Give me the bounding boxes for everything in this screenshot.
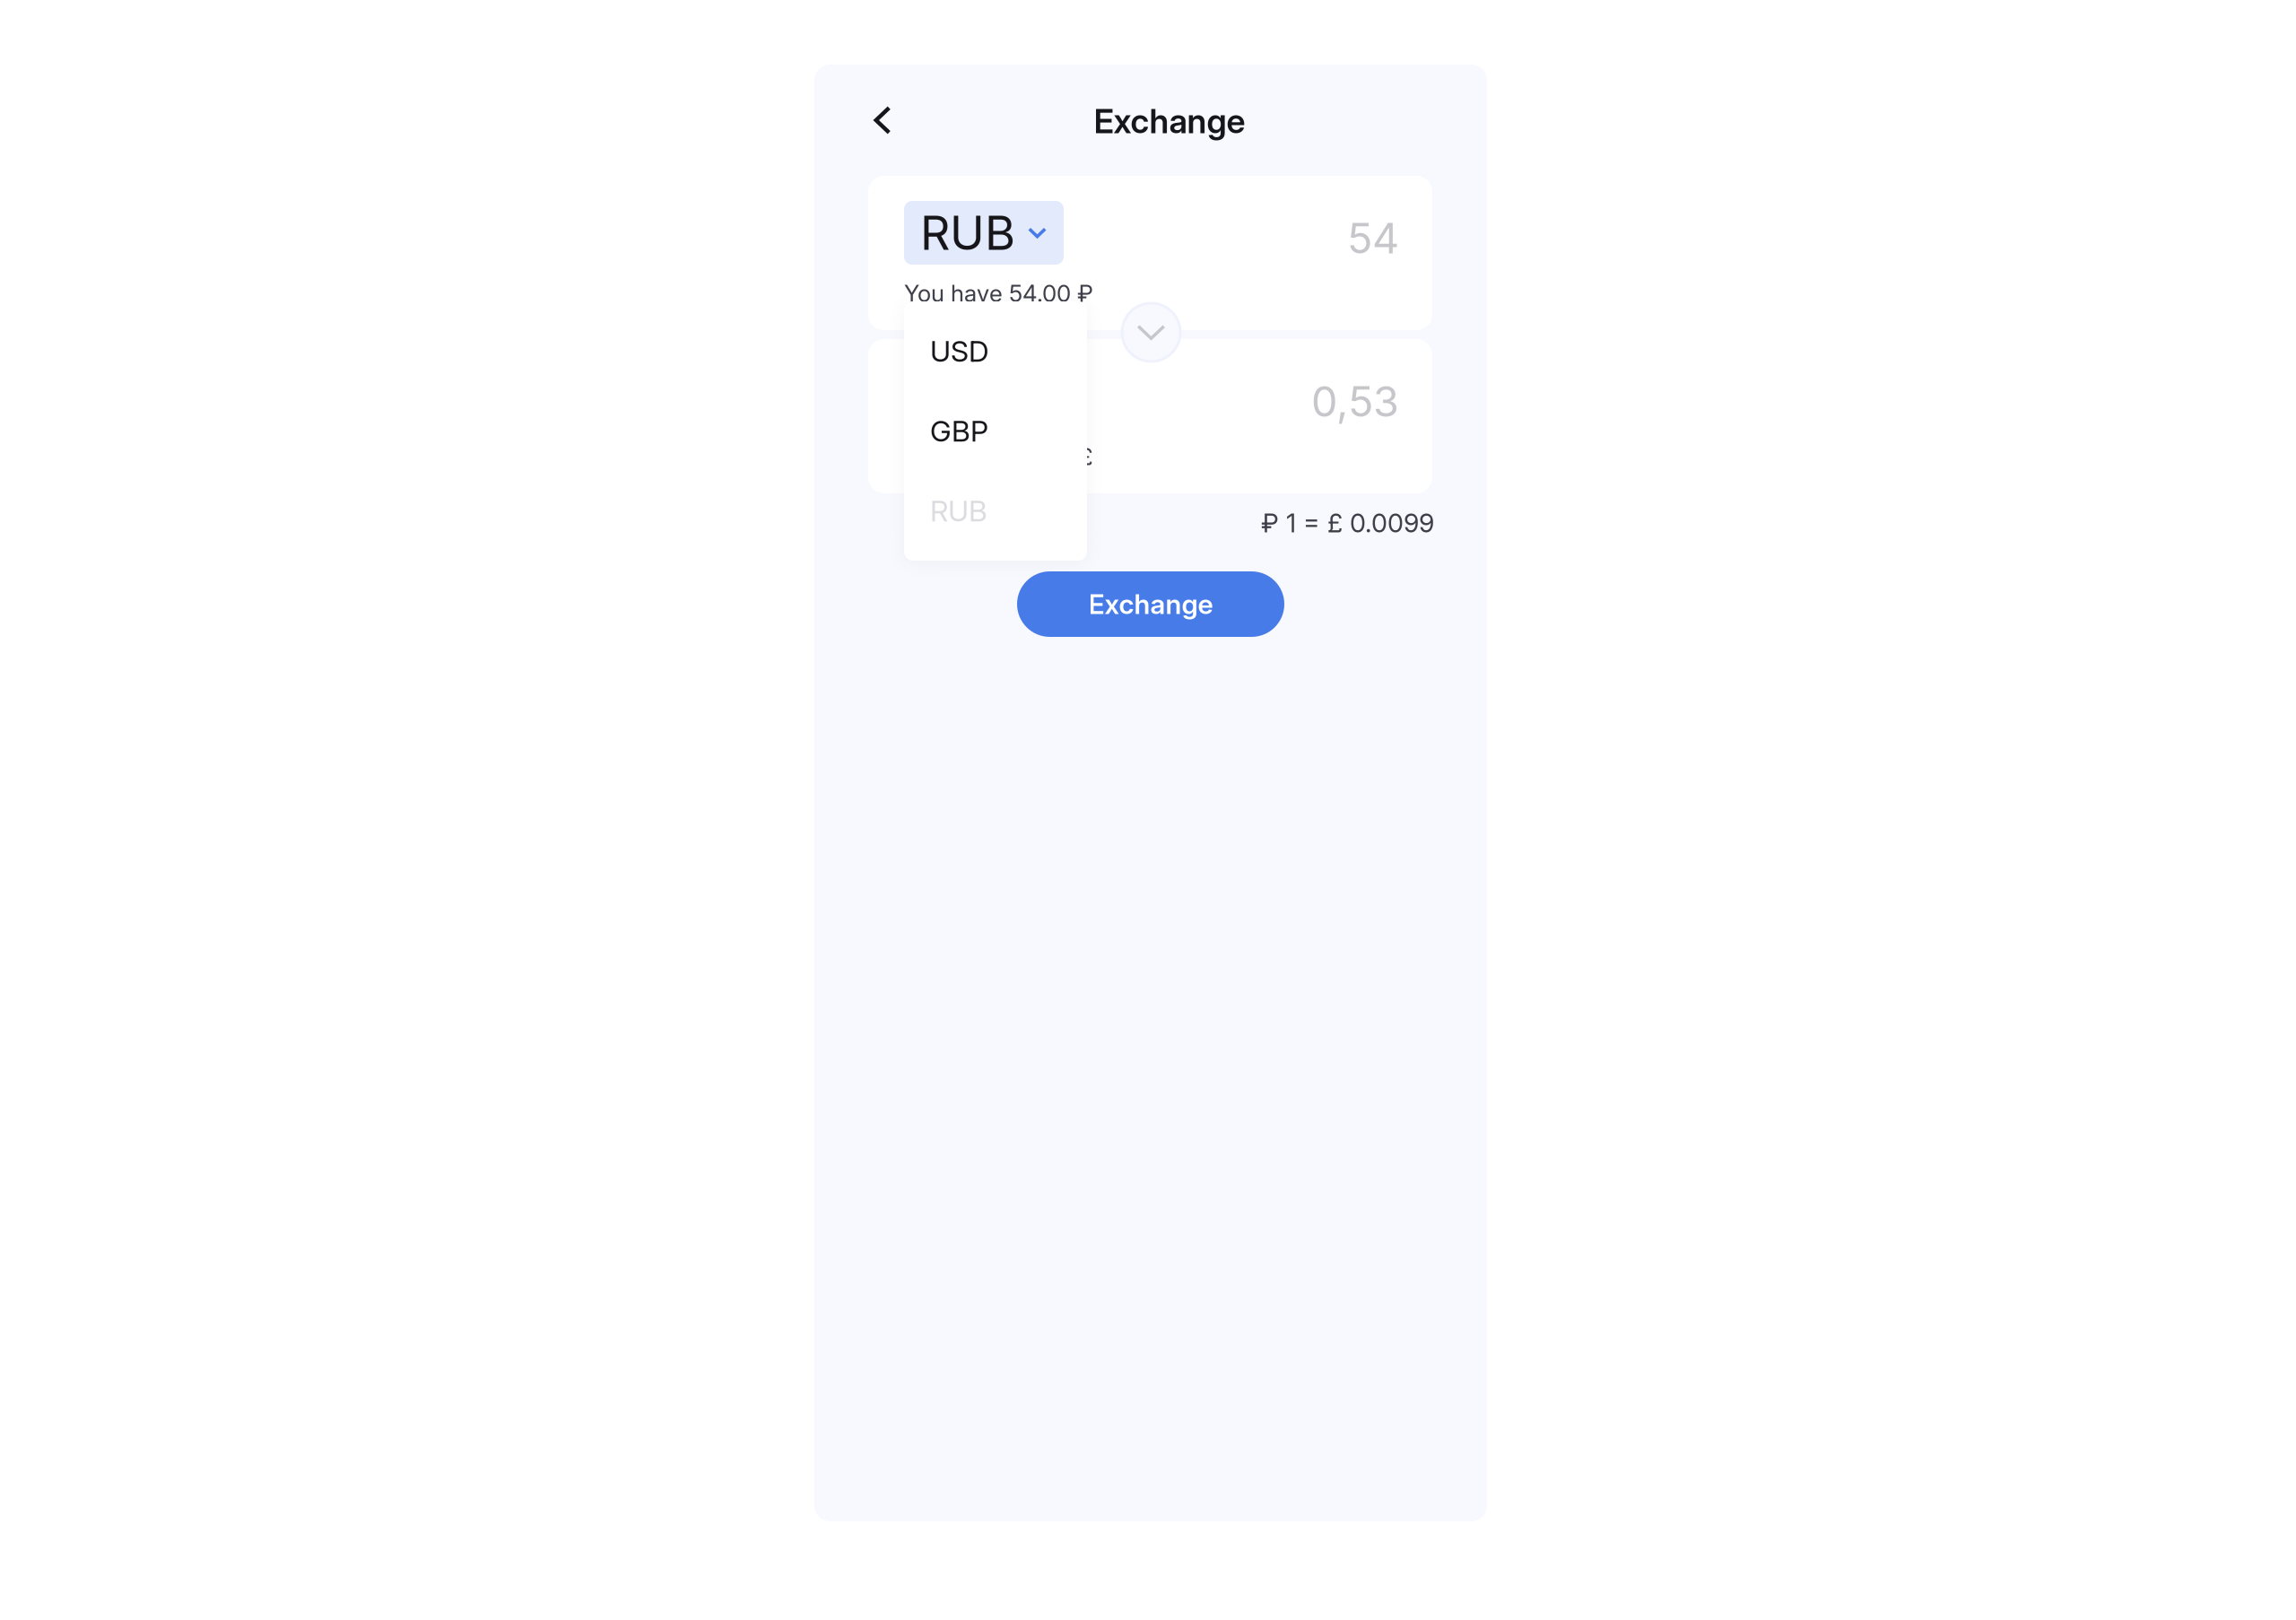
staticText: RUB <box>930 493 987 528</box>
button[interactable]: RUB <box>904 471 1087 551</box>
button[interactable]: GBP <box>904 364 1064 428</box>
button[interactable]: 0,53 <box>1130 370 1399 433</box>
staticText: 0,53 <box>1311 376 1399 427</box>
staticText: Exchange <box>1094 101 1245 141</box>
button[interactable]: USD <box>904 311 1087 391</box>
staticText: Exchange <box>1088 588 1213 620</box>
button[interactable]: 54 <box>1130 206 1399 270</box>
staticText: GBP <box>920 368 1015 424</box>
button[interactable]: RUB <box>904 201 1064 265</box>
staticText: GBP <box>930 414 988 448</box>
staticText: You have 54.00 ₽ <box>904 279 1093 307</box>
staticText: You have 0.00 £ <box>919 443 1093 471</box>
staticText: ₽ 1 = £ 0.0099 <box>1261 507 1434 539</box>
button[interactable]: Swap currencies <box>1122 303 1180 361</box>
button[interactable]: GBP <box>904 391 1087 471</box>
button[interactable]: Back <box>855 92 910 148</box>
button[interactable]: Exchange <box>1017 571 1284 637</box>
staticText: RUB <box>920 205 1015 261</box>
staticText: USD <box>930 334 989 368</box>
staticText: 54 <box>1347 213 1399 264</box>
